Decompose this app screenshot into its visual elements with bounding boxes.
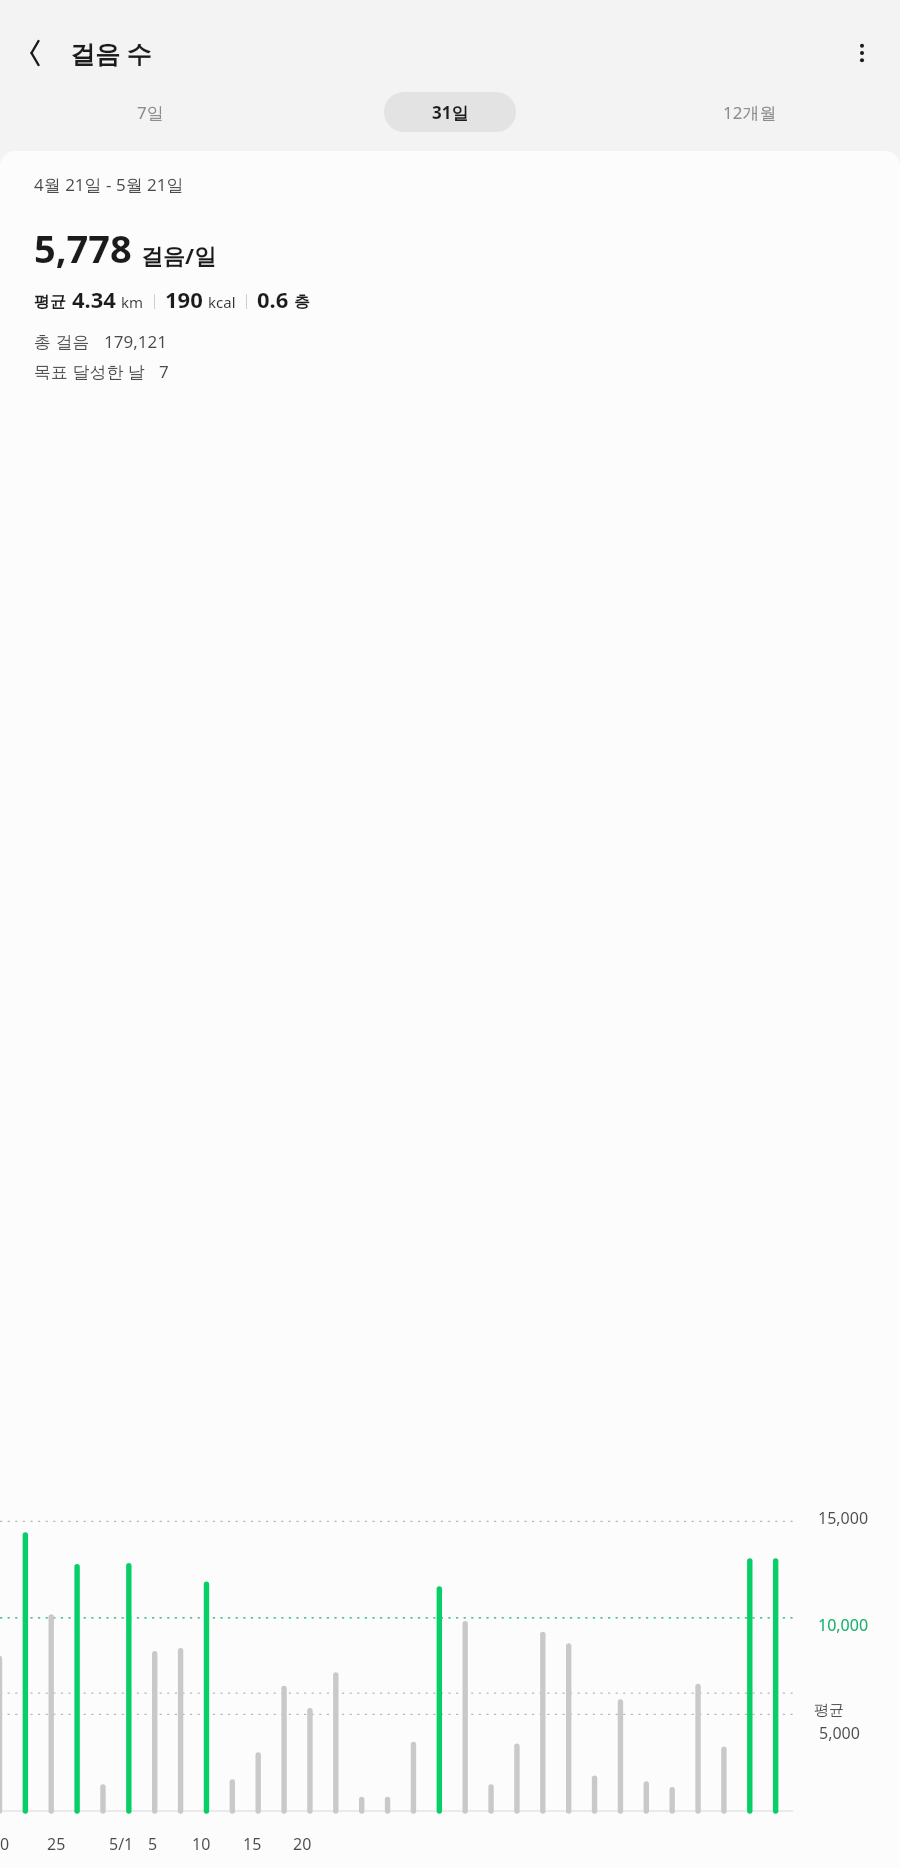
staticText: 7일 [137, 101, 164, 124]
staticText: 5 [148, 1833, 158, 1855]
staticText: 평균 [814, 1701, 844, 1720]
staticText: 총 걸음 [34, 330, 90, 353]
staticText: 179,121 [104, 330, 167, 353]
button[interactable]: 7일 [84, 92, 216, 132]
staticText: km [121, 292, 144, 312]
staticText: 10,000 [818, 1614, 869, 1636]
staticText: 15 [243, 1833, 262, 1855]
staticText: 4.34 [72, 284, 116, 314]
staticText: kcal [208, 292, 236, 312]
staticText: 20 [293, 1833, 312, 1855]
staticText: 걸음 수 [70, 36, 152, 70]
button[interactable]: 31일 [384, 92, 516, 132]
button[interactable]: More options [838, 29, 886, 77]
staticText: 4월 21일 - 5월 21일 [34, 173, 184, 196]
staticText: 7 [159, 360, 169, 383]
staticText: 15,000 [818, 1507, 869, 1529]
staticText: 평균 [34, 292, 66, 312]
staticText: 31일 [432, 101, 469, 124]
staticText: 190 [165, 284, 203, 314]
staticText: 5,000 [819, 1722, 860, 1744]
staticText: 5,778 [34, 222, 132, 274]
staticText: 0 [0, 1833, 10, 1855]
staticText: 12개월 [723, 101, 777, 124]
staticText: 목표 달성한 날 [34, 360, 145, 383]
staticText: 5/1 [109, 1833, 134, 1855]
staticText: 25 [47, 1833, 66, 1855]
button[interactable]: Back [10, 29, 58, 77]
staticText: 층 [294, 292, 310, 312]
button[interactable]: 12개월 [684, 92, 816, 132]
staticText: 10 [192, 1833, 211, 1855]
staticText: 걸음/일 [141, 240, 217, 270]
staticText: 0.6 [257, 284, 289, 314]
